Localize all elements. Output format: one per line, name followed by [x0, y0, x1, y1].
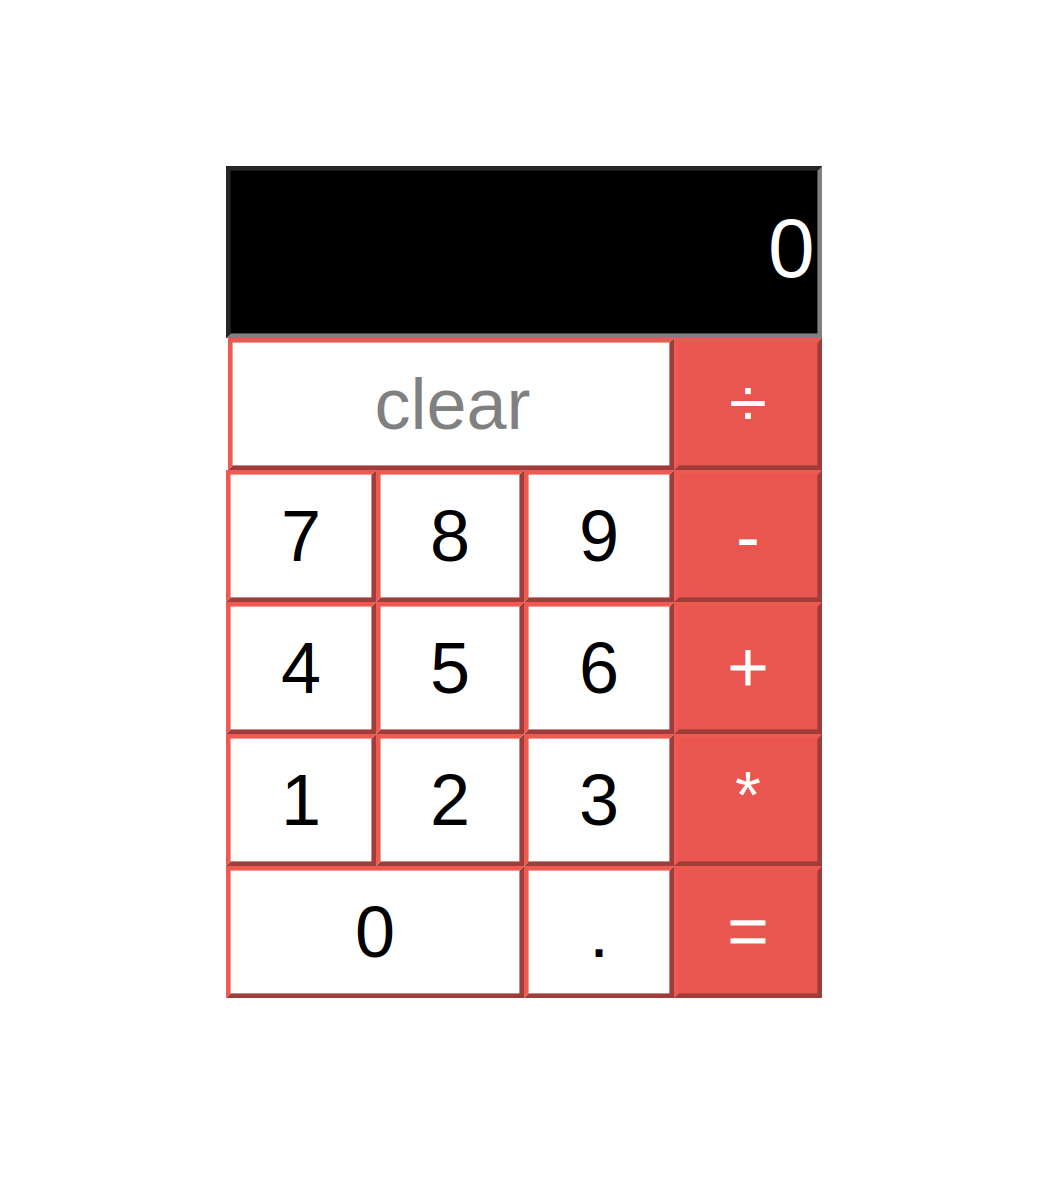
button[interactable]: 1	[226, 734, 376, 866]
staticText: 1	[281, 760, 321, 840]
button[interactable]: 0	[226, 866, 524, 998]
staticText: 7	[281, 496, 321, 576]
staticText: clear	[374, 364, 530, 444]
button[interactable]: 6	[524, 602, 674, 734]
button[interactable]: 2	[376, 734, 524, 866]
staticText: =	[727, 890, 769, 971]
button[interactable]: clear	[228, 338, 674, 470]
button[interactable]: .	[524, 866, 674, 998]
staticText: *	[735, 758, 761, 832]
staticText: +	[727, 626, 769, 707]
button[interactable]: 9	[524, 470, 674, 602]
button[interactable]: 8	[376, 470, 524, 602]
staticText: 5	[430, 628, 470, 708]
staticText: 6	[579, 628, 619, 708]
staticText: 0	[355, 892, 395, 972]
button[interactable]: =	[674, 866, 822, 998]
staticText: 0	[768, 201, 815, 295]
staticText: 8	[430, 496, 470, 576]
button[interactable]: 3	[524, 734, 674, 866]
button[interactable]: ÷	[674, 338, 822, 470]
staticText: 9	[579, 496, 619, 576]
button[interactable]: -	[674, 470, 822, 602]
staticText: .	[589, 892, 609, 972]
staticText: 4	[281, 628, 321, 708]
button[interactable]: 5	[376, 602, 524, 734]
staticText: 2	[430, 760, 470, 840]
staticText: -	[736, 496, 760, 576]
button[interactable]: *	[674, 734, 822, 866]
staticText: 3	[579, 760, 619, 840]
button[interactable]: +	[674, 602, 822, 734]
button[interactable]: 7	[226, 470, 376, 602]
button[interactable]: 4	[226, 602, 376, 734]
staticText: ÷	[729, 363, 767, 441]
